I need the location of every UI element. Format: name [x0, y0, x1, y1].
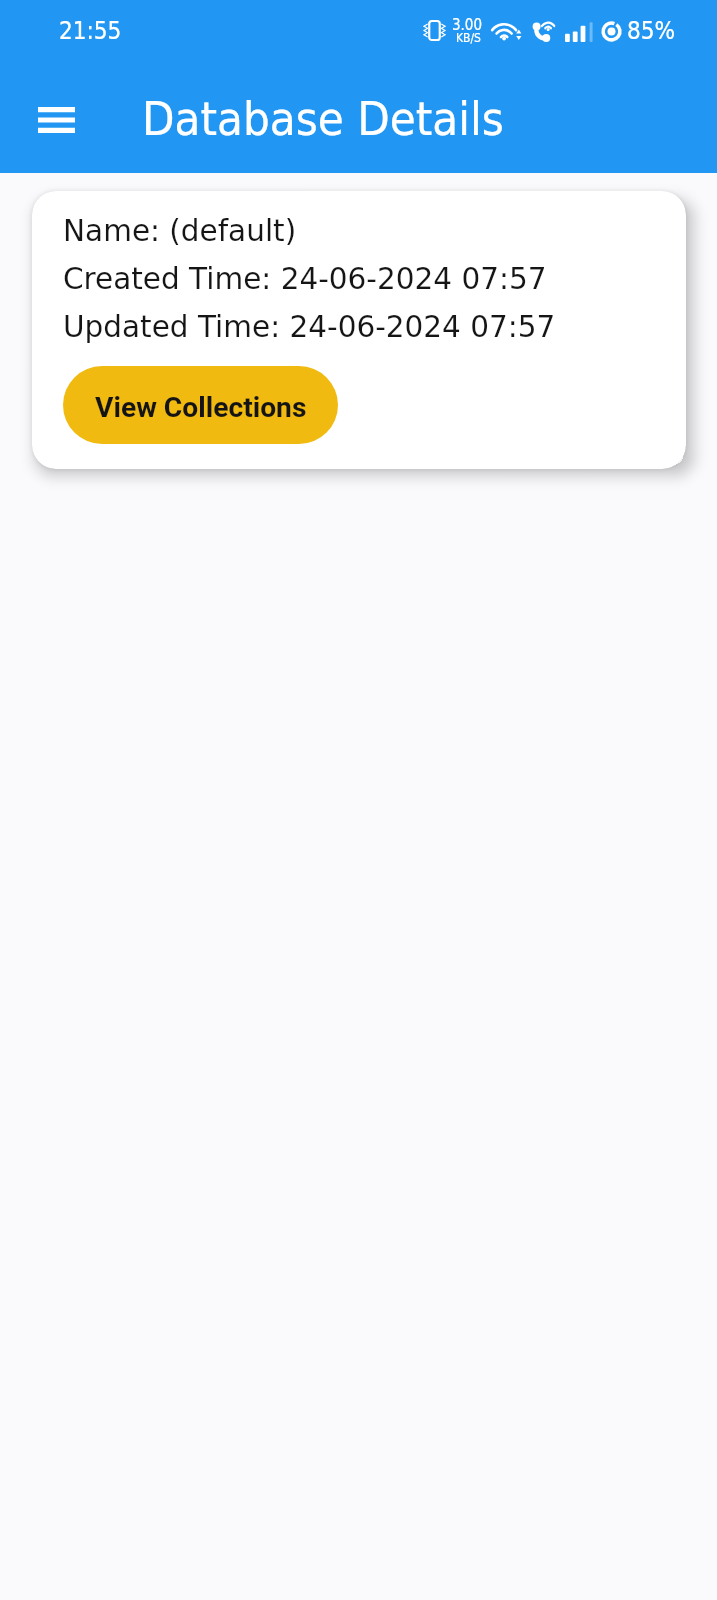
staticText: Updated Time: 24-06-2024 07:57: [63, 310, 556, 344]
staticText: Name: (default): [63, 214, 297, 248]
staticText: 3.00: [452, 16, 483, 33]
staticText: 21:55: [59, 17, 122, 45]
staticText: Database Details: [142, 91, 504, 146]
staticText: View Collections: [95, 391, 307, 424]
staticText: 85%: [627, 17, 675, 45]
button[interactable]: Open navigation menu: [28, 92, 84, 148]
staticText: Created Time: 24-06-2024 07:57: [63, 262, 547, 296]
button[interactable]: View Collections: [63, 366, 338, 444]
staticText: KB/S: [456, 31, 481, 45]
